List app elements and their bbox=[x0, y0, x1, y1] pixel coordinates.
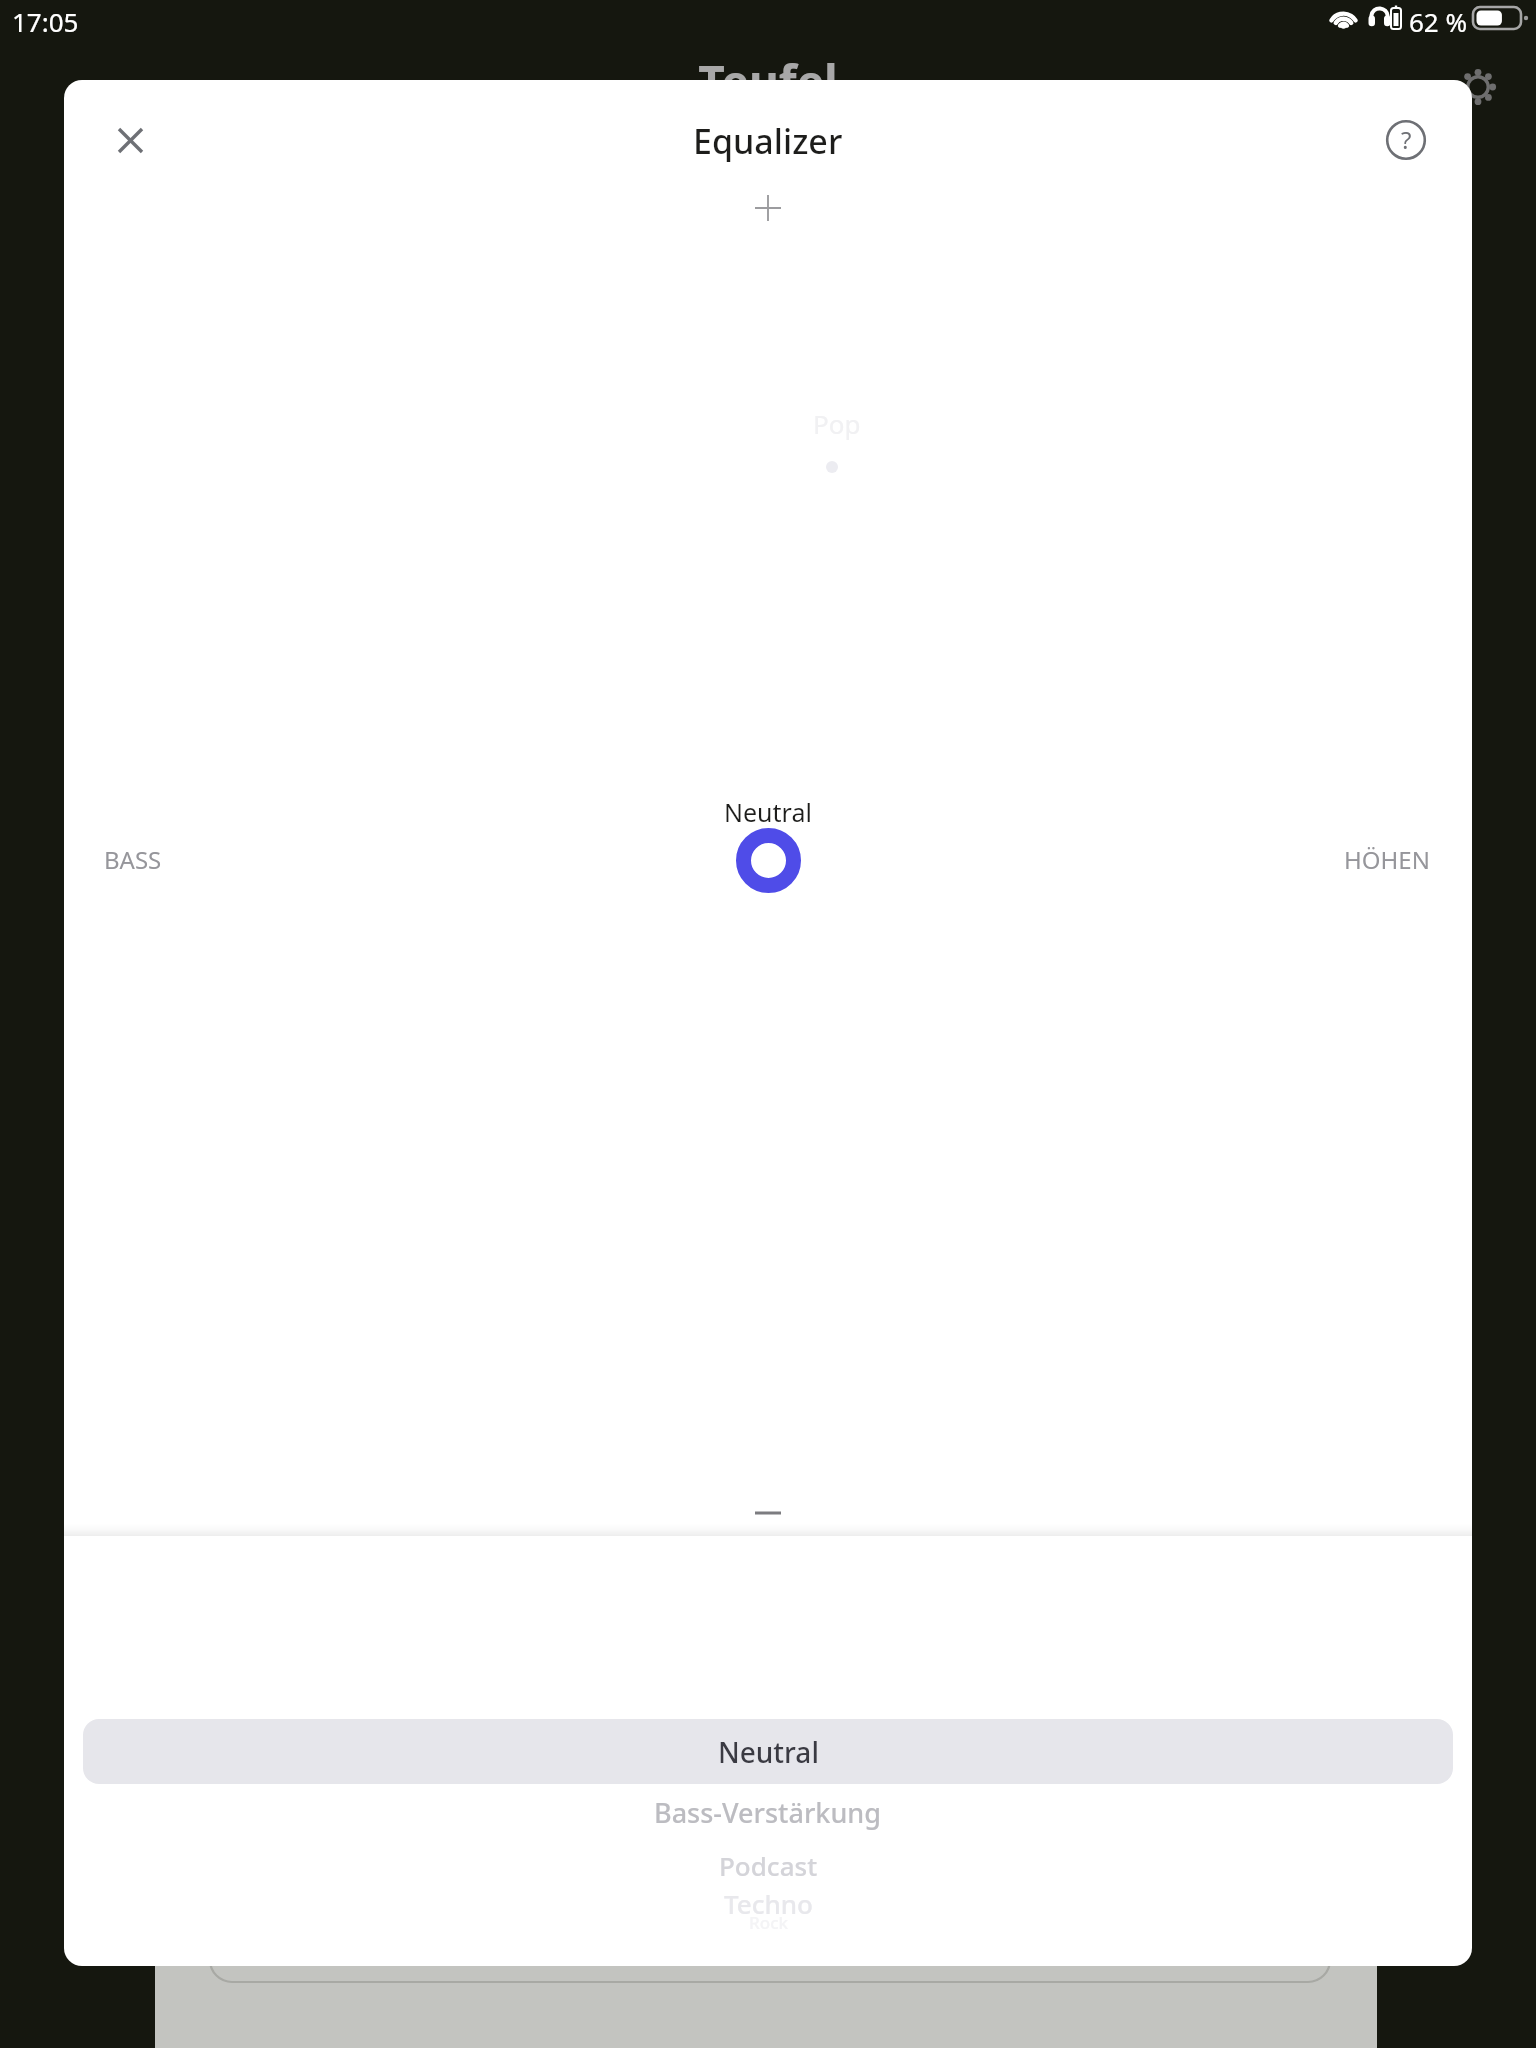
staticText: Neutral bbox=[718, 1733, 819, 1771]
staticText: Bass-Verstärkung bbox=[654, 1794, 882, 1831]
staticText: Pop bbox=[813, 406, 861, 441]
staticText: BASS bbox=[104, 843, 162, 876]
staticText: Equalizer bbox=[693, 118, 843, 164]
staticText: Teufel bbox=[0, 50, 1536, 113]
staticText: Rock bbox=[749, 1911, 788, 1934]
button[interactable]: Podcast bbox=[64, 1844, 1472, 1886]
button[interactable]: Pop band handle bbox=[783, 400, 887, 478]
staticText: Techno bbox=[724, 1886, 813, 1921]
button[interactable]: Help bbox=[1370, 104, 1442, 176]
staticText: Neutral bbox=[724, 795, 812, 829]
staticText: Podcast bbox=[719, 1848, 818, 1883]
button[interactable]: Neutral band handle bbox=[736, 828, 801, 893]
staticText: ? bbox=[1401, 123, 1412, 156]
staticText: 62 % bbox=[1409, 4, 1468, 39]
staticText: HÖHEN bbox=[1344, 843, 1430, 876]
button[interactable]: Close bbox=[94, 104, 166, 176]
button[interactable]: Settings bbox=[1448, 57, 1508, 117]
staticText: 17:05 bbox=[12, 4, 79, 39]
button[interactable]: Bass-Verstärkung bbox=[64, 1791, 1472, 1834]
button[interactable]: Neutral bbox=[83, 1719, 1453, 1784]
